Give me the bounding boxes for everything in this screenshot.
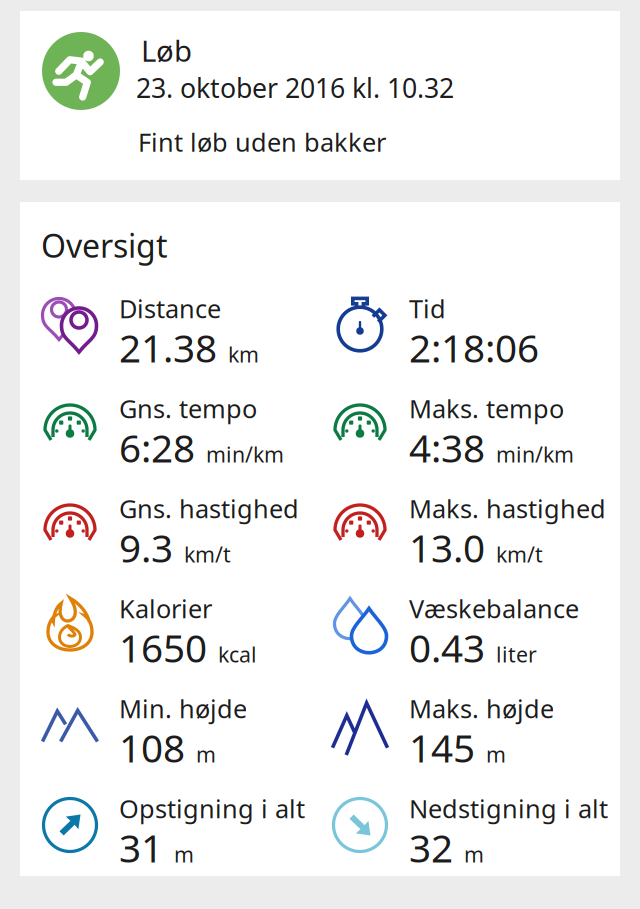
staticText: km xyxy=(228,340,259,368)
staticText: Gns. tempo xyxy=(119,392,257,425)
staticText: 23. oktober 2016 kl. 10.32 xyxy=(136,70,454,105)
staticText: Nedstigning i alt xyxy=(409,792,608,825)
staticText: kcal xyxy=(218,640,257,668)
staticText: 2:18:06 xyxy=(409,322,539,373)
staticText: Fint løb uden bakker xyxy=(138,125,386,159)
staticText: Løb xyxy=(141,31,192,70)
staticText: 108 xyxy=(119,722,185,773)
button[interactable]: Opstigning i alt xyxy=(39,791,329,891)
staticText: Maks. tempo xyxy=(409,392,564,425)
staticText: Oversigt xyxy=(41,224,168,266)
staticText: 6:28 xyxy=(119,422,195,473)
staticText: 21.38 xyxy=(119,322,217,373)
staticText: 32 xyxy=(409,822,453,873)
staticText: min/km xyxy=(206,440,284,468)
staticText: 145 xyxy=(409,722,475,773)
button[interactable]: Maks. højde xyxy=(329,691,619,791)
staticText: min/km xyxy=(496,440,574,468)
button[interactable]: Væskebalance xyxy=(329,591,619,691)
staticText: Opstigning i alt xyxy=(119,792,305,825)
staticText: Gns. hastighed xyxy=(119,492,299,525)
button[interactable]: Distance xyxy=(39,291,329,391)
staticText: 4:38 xyxy=(409,422,485,473)
staticText: Min. højde xyxy=(119,692,247,725)
staticText: 31 xyxy=(119,822,163,873)
staticText: Maks. hastighed xyxy=(409,492,606,525)
button[interactable]: Gns. hastighed xyxy=(39,491,329,591)
button[interactable]: Nedstigning i alt xyxy=(329,791,619,891)
staticText: 1650 xyxy=(119,622,207,673)
staticText: Tid xyxy=(409,292,446,325)
button[interactable]: Maks. tempo xyxy=(329,391,619,491)
button[interactable]: Tid xyxy=(329,291,619,391)
staticText: 9.3 xyxy=(119,522,173,573)
staticText: m xyxy=(464,840,484,868)
staticText: 13.0 xyxy=(409,522,485,573)
staticText: Væskebalance xyxy=(409,592,579,625)
staticText: liter xyxy=(496,640,537,668)
staticText: 0.43 xyxy=(409,622,485,673)
button[interactable]: Kalorier xyxy=(39,591,329,691)
button[interactable]: Gns. tempo xyxy=(39,391,329,491)
staticText: m xyxy=(486,740,506,768)
staticText: Kalorier xyxy=(119,592,212,625)
staticText: m xyxy=(196,740,216,768)
staticText: Maks. højde xyxy=(409,692,554,725)
button[interactable]: Min. højde xyxy=(39,691,329,791)
staticText: km/t xyxy=(496,540,543,568)
staticText: Distance xyxy=(119,292,221,325)
staticText: m xyxy=(174,840,194,868)
staticText: km/t xyxy=(184,540,231,568)
button[interactable]: Maks. hastighed xyxy=(329,491,619,591)
